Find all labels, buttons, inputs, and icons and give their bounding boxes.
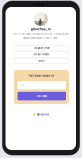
button[interactable]: Contact [14, 58, 69, 64]
staticText: My last website [34, 53, 49, 56]
button[interactable]: Instagram Profile [14, 45, 69, 51]
staticText: @hochaa_m [31, 27, 51, 31]
staticText: Instagram Profile [33, 47, 49, 49]
staticText: Put your Code in [28, 74, 54, 77]
staticText: This is text about the description that … [13, 33, 68, 35]
staticText: 1234 [20, 84, 24, 86]
button[interactable]: My last website [14, 52, 69, 57]
staticText: Contact [38, 60, 45, 62]
button[interactable]: Get Links [17, 92, 66, 100]
staticText: anyone should know to buy it now! [23, 37, 58, 40]
staticText: Get Links [37, 95, 47, 97]
staticText: every.link [37, 113, 49, 116]
